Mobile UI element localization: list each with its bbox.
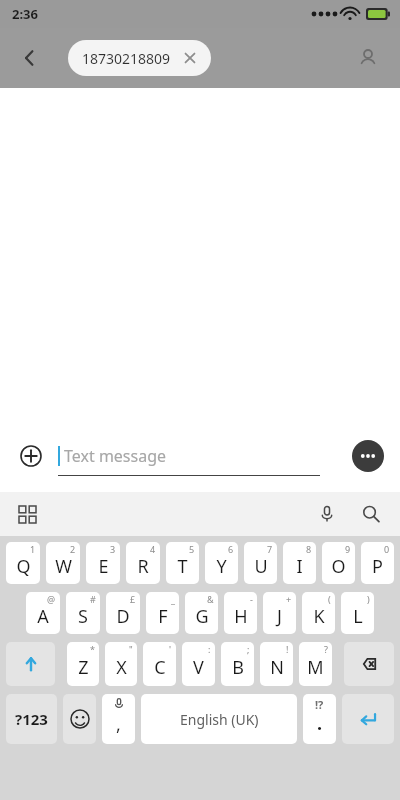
- button[interactable]: Voice input: [310, 497, 344, 531]
- staticText: S: [78, 604, 88, 629]
- button[interactable]: Add attachment: [16, 441, 46, 471]
- staticText: !: [286, 643, 289, 655]
- button[interactable]: £: [106, 592, 140, 634]
- staticText: 18730218809: [82, 49, 171, 68]
- staticText: ,: [116, 712, 121, 737]
- button[interactable]: 4: [126, 542, 160, 584]
- button[interactable]: @: [26, 592, 60, 634]
- staticText: ): [367, 593, 370, 605]
- staticText: :: [208, 643, 211, 655]
- staticText: ;: [247, 643, 250, 655]
- button[interactable]: ": [105, 642, 137, 686]
- button[interactable]: :: [182, 642, 215, 686]
- button[interactable]: ': [143, 642, 176, 686]
- button[interactable]: 9: [322, 542, 355, 584]
- staticText: O: [331, 554, 346, 579]
- staticText: 1: [30, 543, 36, 555]
- staticText: P: [372, 554, 383, 579]
- staticText: F: [158, 604, 168, 629]
- staticText: ': [169, 643, 172, 655]
- staticText: _: [171, 593, 175, 605]
- staticText: B: [232, 655, 244, 680]
- staticText: Q: [16, 554, 31, 579]
- staticText: N: [270, 655, 284, 680]
- staticText: H: [234, 604, 248, 629]
- staticText: (: [328, 593, 331, 605]
- button[interactable]: Text message: [58, 436, 320, 476]
- staticText: 5: [189, 543, 195, 555]
- button[interactable]: Backspace: [344, 642, 394, 686]
- button[interactable]: English (UK): [141, 694, 297, 744]
- button[interactable]: &: [185, 592, 218, 634]
- staticText: K: [313, 604, 325, 629]
- staticText: @: [47, 593, 56, 605]
- staticText: ": [129, 643, 133, 655]
- staticText: 6: [228, 543, 234, 555]
- staticText: M: [307, 655, 324, 680]
- staticText: English (UK): [180, 710, 259, 729]
- button[interactable]: _: [146, 592, 179, 634]
- staticText: T: [177, 554, 188, 579]
- button[interactable]: ,: [102, 694, 135, 744]
- staticText: £: [130, 593, 136, 605]
- button[interactable]: More options: [352, 440, 384, 472]
- staticText: 2:36: [12, 5, 38, 23]
- staticText: J: [277, 604, 282, 629]
- staticText: ?: [324, 643, 328, 655]
- button[interactable]: 0: [361, 542, 394, 584]
- button[interactable]: ?123: [6, 694, 57, 744]
- staticText: -: [250, 593, 253, 605]
- button[interactable]: Shift: [6, 642, 55, 686]
- button[interactable]: #: [66, 592, 100, 634]
- button[interactable]: 5: [166, 542, 199, 584]
- button[interactable]: ): [341, 592, 374, 634]
- staticText: !?: [315, 697, 324, 712]
- staticText: A: [37, 604, 49, 629]
- staticText: G: [195, 604, 209, 629]
- staticText: X: [116, 655, 127, 680]
- button[interactable]: *: [67, 642, 99, 686]
- staticText: Y: [216, 554, 227, 579]
- staticText: W: [55, 554, 72, 579]
- staticText: C: [154, 655, 166, 680]
- button[interactable]: Contacts: [344, 34, 392, 82]
- staticText: 2: [70, 543, 76, 555]
- staticText: 3: [110, 543, 116, 555]
- staticText: L: [353, 604, 363, 629]
- staticText: 7: [267, 543, 273, 555]
- button[interactable]: !: [260, 642, 293, 686]
- staticText: E: [98, 554, 109, 579]
- button[interactable]: +: [263, 592, 296, 634]
- staticText: +: [286, 593, 292, 605]
- button[interactable]: 8: [283, 542, 316, 584]
- staticText: *: [90, 643, 95, 655]
- staticText: 9: [345, 543, 351, 555]
- staticText: I: [296, 554, 303, 579]
- button[interactable]: -: [224, 592, 257, 634]
- staticText: V: [193, 655, 204, 680]
- staticText: 8: [306, 543, 312, 555]
- button[interactable]: (: [302, 592, 335, 634]
- staticText: #: [90, 593, 96, 605]
- staticText: Text message: [64, 445, 167, 467]
- button[interactable]: Enter: [342, 694, 394, 744]
- button[interactable]: 6: [205, 542, 238, 584]
- button[interactable]: Search: [354, 497, 388, 531]
- button[interactable]: 2: [46, 542, 80, 584]
- button[interactable]: 1: [6, 542, 40, 584]
- staticText: .: [317, 711, 323, 736]
- button[interactable]: Back: [6, 34, 54, 82]
- button[interactable]: ;: [221, 642, 254, 686]
- button[interactable]: ?: [299, 642, 332, 686]
- button[interactable]: Keyboard layouts: [10, 497, 44, 531]
- button[interactable]: Emoji: [63, 694, 96, 744]
- staticText: R: [137, 554, 149, 579]
- staticText: 4: [150, 543, 156, 555]
- staticText: &: [207, 593, 214, 605]
- staticText: D: [116, 604, 130, 629]
- button[interactable]: !?: [303, 694, 336, 744]
- button[interactable]: 3: [86, 542, 120, 584]
- button[interactable]: 7: [244, 542, 277, 584]
- button[interactable]: 18730218809: [68, 40, 211, 76]
- staticText: Z: [78, 655, 89, 680]
